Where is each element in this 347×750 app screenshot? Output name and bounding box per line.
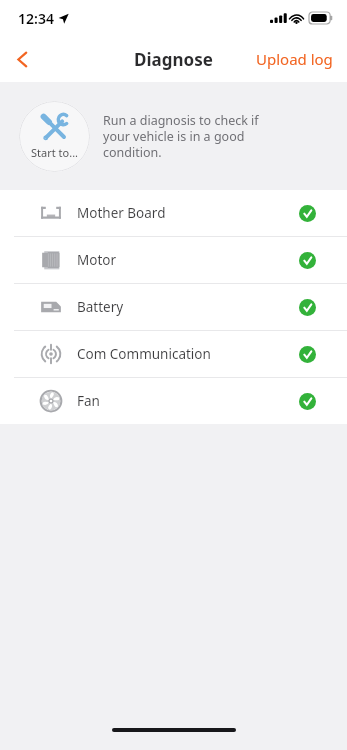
staticText: Motor xyxy=(77,251,117,269)
button[interactable]: Fan xyxy=(0,378,347,424)
staticText: Diagnose xyxy=(134,48,213,71)
button[interactable]: Com Communication xyxy=(0,331,347,377)
button[interactable]: Upload log xyxy=(242,36,347,82)
button[interactable]: Mother Board xyxy=(0,190,347,236)
staticText: Com Communication xyxy=(77,345,211,363)
button[interactable]: Back xyxy=(0,37,44,81)
staticText: Battery xyxy=(77,298,124,316)
staticText: Fan xyxy=(77,392,100,410)
staticText: Run a diagnosis to check if your vehicle… xyxy=(103,112,259,161)
button[interactable]: Start to... xyxy=(19,101,90,172)
button[interactable]: Motor xyxy=(0,237,347,283)
staticText: Start to... xyxy=(31,145,79,160)
button[interactable]: Battery xyxy=(0,284,347,330)
staticText: 12:34 xyxy=(18,9,54,28)
staticText: Mother Board xyxy=(77,204,166,222)
staticText: Upload log xyxy=(256,49,333,69)
